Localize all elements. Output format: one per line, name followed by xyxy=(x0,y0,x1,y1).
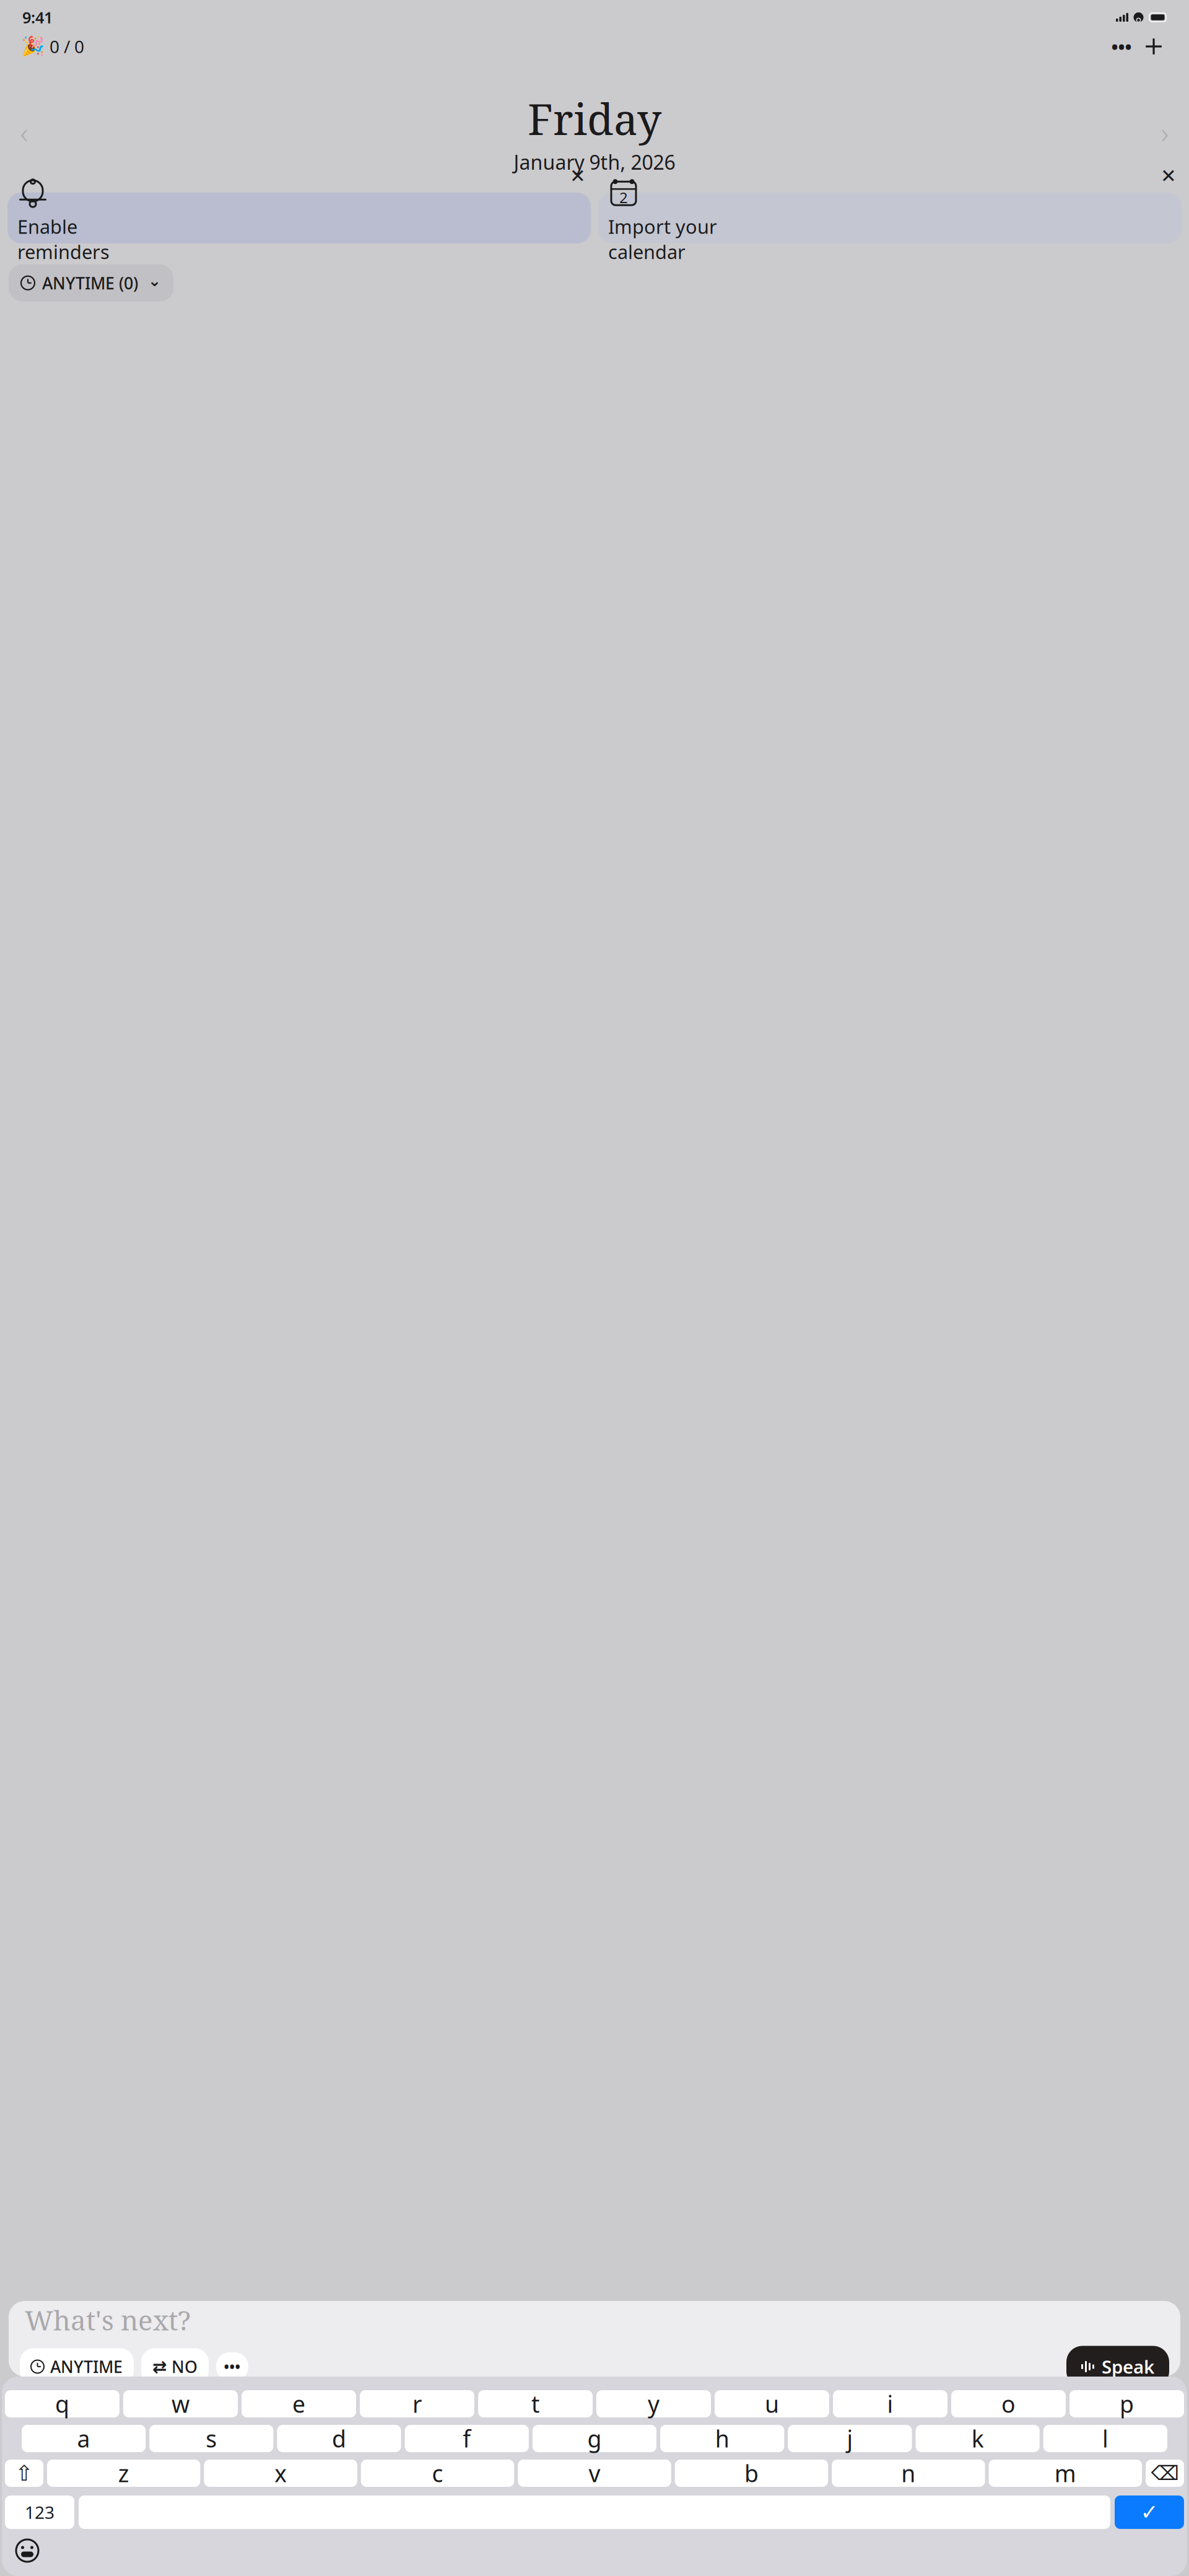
staticText: h xyxy=(715,2423,729,2454)
staticText: Speak xyxy=(1102,2355,1154,2379)
staticText: i xyxy=(887,2388,893,2419)
staticText: ••• xyxy=(1111,34,1132,59)
staticText: j xyxy=(847,2423,853,2454)
staticText: a xyxy=(77,2423,90,2454)
staticText: o xyxy=(1001,2388,1016,2419)
staticText: ✕ xyxy=(570,165,586,187)
button[interactable]: y xyxy=(596,2390,711,2417)
staticText: f xyxy=(463,2423,471,2454)
staticText: b xyxy=(744,2458,759,2489)
staticText: ✕ xyxy=(1161,165,1177,187)
button[interactable]: m xyxy=(989,2460,1142,2487)
staticText: 123 xyxy=(25,2501,54,2524)
staticText: x xyxy=(274,2458,287,2489)
button[interactable]: g xyxy=(533,2425,656,2452)
staticText: g xyxy=(587,2423,602,2454)
button[interactable]: Emoji keyboard xyxy=(12,2535,43,2566)
button[interactable]: Add task xyxy=(1137,32,1170,61)
button[interactable]: Space xyxy=(79,2495,1110,2529)
button[interactable]: ANYTIME (0) xyxy=(9,264,173,301)
staticText: › xyxy=(1161,112,1169,152)
button[interactable]: f xyxy=(405,2425,529,2452)
staticText: 9:41 xyxy=(22,7,53,28)
button[interactable]: p xyxy=(1069,2390,1184,2417)
staticText: c xyxy=(432,2458,443,2489)
button[interactable]: l xyxy=(1043,2425,1167,2452)
button[interactable]: a xyxy=(22,2425,146,2452)
staticText: ANYTIME xyxy=(50,2356,123,2378)
staticText: y xyxy=(648,2388,660,2419)
staticText: NO xyxy=(172,2356,198,2378)
button[interactable]: Enable reminders xyxy=(7,193,591,243)
button[interactable]: 2 xyxy=(598,193,1182,243)
button[interactable]: c xyxy=(361,2460,514,2487)
staticText: w xyxy=(172,2388,189,2419)
button[interactable]: More task options xyxy=(216,2352,248,2381)
staticText: q xyxy=(55,2388,69,2419)
button[interactable]: u xyxy=(715,2390,829,2417)
staticText: e xyxy=(292,2388,305,2419)
staticText: ⌫ xyxy=(1151,2462,1179,2484)
staticText: t xyxy=(531,2388,539,2419)
button[interactable]: e xyxy=(242,2390,356,2417)
staticText: m xyxy=(1054,2458,1076,2489)
button[interactable]: Shift xyxy=(5,2460,43,2487)
button[interactable]: Delete xyxy=(1146,2460,1184,2487)
staticText: v xyxy=(589,2458,600,2489)
staticText: What's next? xyxy=(25,2301,191,2338)
button[interactable]: Next day xyxy=(1148,113,1182,151)
staticText: Friday xyxy=(528,89,661,148)
button[interactable]: r xyxy=(360,2390,474,2417)
staticText: 0 / 0 xyxy=(50,35,84,58)
staticText: Enable reminders xyxy=(17,214,110,264)
staticText: ••• xyxy=(224,2357,241,2376)
staticText: n xyxy=(901,2458,916,2489)
button[interactable]: 123 xyxy=(5,2495,74,2529)
button[interactable]: ANYTIME xyxy=(20,2348,134,2385)
staticText: p xyxy=(1120,2388,1134,2419)
staticText: r xyxy=(412,2388,422,2419)
button[interactable]: ⇄ xyxy=(141,2348,209,2385)
staticText: ‹ xyxy=(20,112,28,152)
button[interactable]: w xyxy=(123,2390,238,2417)
staticText: Import your calendar xyxy=(608,214,717,264)
button[interactable]: Dismiss import your calendar xyxy=(1156,163,1182,189)
staticText: 2 xyxy=(619,188,628,207)
button[interactable]: j xyxy=(788,2425,912,2452)
button[interactable]: t xyxy=(478,2390,593,2417)
staticText: ANYTIME (0) xyxy=(42,272,138,294)
button[interactable]: s xyxy=(149,2425,273,2452)
button[interactable]: Previous day xyxy=(7,113,41,151)
button[interactable]: Done xyxy=(1115,2495,1184,2529)
button[interactable]: o xyxy=(951,2390,1066,2417)
staticText: 🎉 xyxy=(21,36,45,57)
button[interactable]: i xyxy=(833,2390,947,2417)
button[interactable]: More options xyxy=(1106,33,1137,59)
button[interactable]: n xyxy=(832,2460,985,2487)
staticText: ✓ xyxy=(1140,2500,1158,2524)
button[interactable]: z xyxy=(47,2460,200,2487)
staticText: k xyxy=(971,2423,984,2454)
staticText: z xyxy=(118,2458,129,2489)
button[interactable]: h xyxy=(660,2425,784,2452)
staticText: ⌄ xyxy=(148,272,161,290)
button[interactable]: Speak xyxy=(1066,2346,1169,2387)
button[interactable]: q xyxy=(5,2390,120,2417)
staticText: u xyxy=(765,2388,779,2419)
button[interactable]: k xyxy=(916,2425,1040,2452)
button[interactable]: x xyxy=(204,2460,357,2487)
staticText: ⇧ xyxy=(15,2461,33,2485)
staticText: ⇄ xyxy=(152,2357,167,2376)
button[interactable]: b xyxy=(675,2460,828,2487)
staticText: s xyxy=(206,2423,217,2454)
button[interactable]: Dismiss enable reminders xyxy=(565,163,591,189)
staticText: January 9th, 2026 xyxy=(514,149,675,175)
staticText: l xyxy=(1102,2423,1108,2454)
staticText: d xyxy=(332,2423,346,2454)
button[interactable]: 🎉 xyxy=(19,30,87,63)
button[interactable]: d xyxy=(277,2425,401,2452)
button[interactable]: v xyxy=(518,2460,671,2487)
